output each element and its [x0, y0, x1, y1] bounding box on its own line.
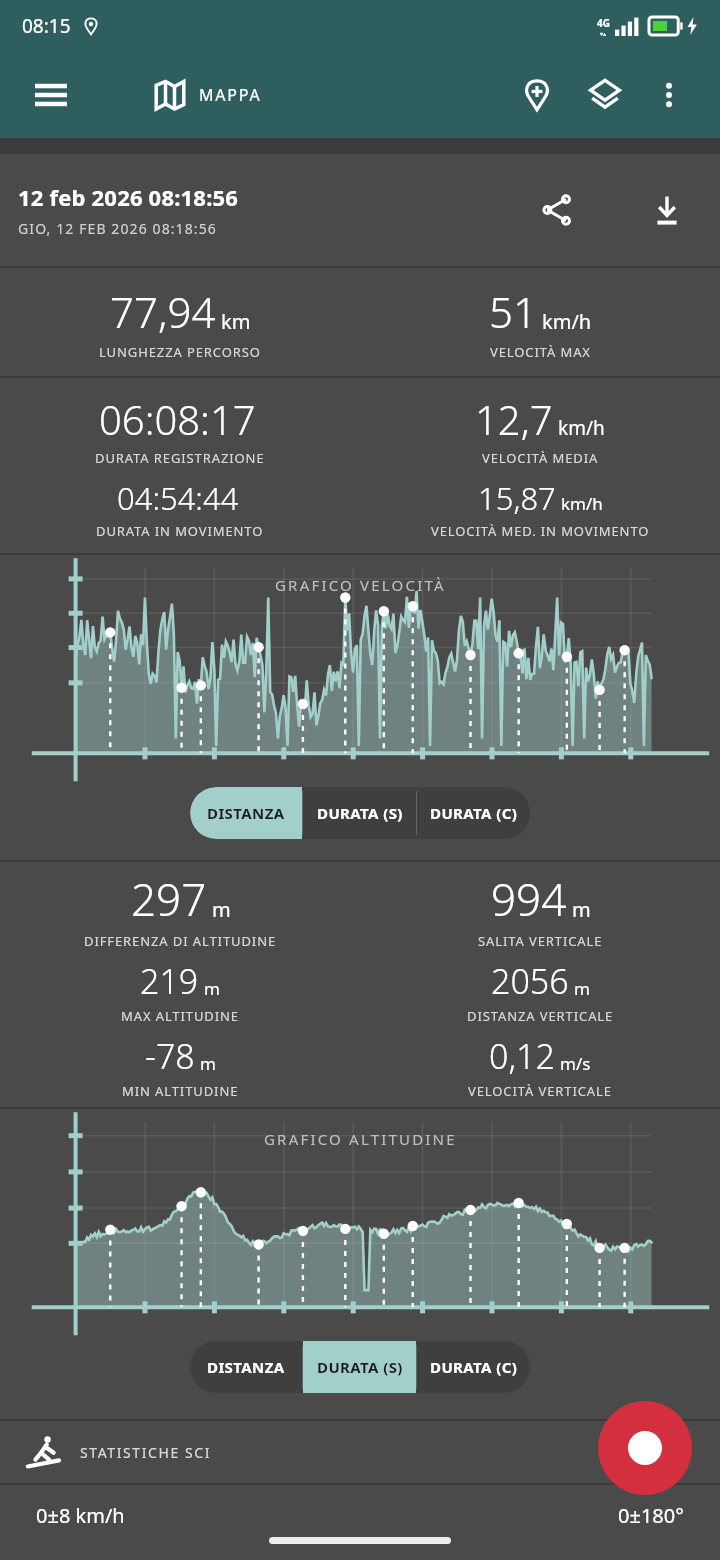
staticText: VELOCITÀ MED. IN MOVIMENTO	[431, 522, 650, 540]
button[interactable]: DISTANZA	[190, 787, 302, 839]
button[interactable]: Altre opzioni	[646, 72, 692, 118]
staticText: 04:54:44	[117, 477, 239, 519]
staticText: DISTANZA	[207, 803, 285, 823]
staticText: 15,87	[478, 477, 556, 519]
staticText: -78	[145, 1033, 195, 1079]
staticText: SALITA VERTICALE	[478, 932, 603, 950]
button[interactable]: DURATA (C)	[417, 1341, 530, 1393]
staticText: DISTANZA VERTICALE	[467, 1007, 614, 1025]
staticText: 4G	[597, 16, 610, 30]
staticText: m	[200, 1052, 216, 1075]
staticText: m	[574, 977, 590, 1000]
staticText: STATISTICHE SCI	[80, 1443, 212, 1462]
staticText: km/h	[558, 415, 605, 441]
staticText: DURATA (C)	[430, 803, 518, 823]
staticText: 0±180°	[618, 1502, 684, 1529]
button[interactable]: Registra	[598, 1401, 692, 1495]
staticText: 0,12	[489, 1033, 555, 1079]
button[interactable]: Aggiungi punto	[514, 72, 560, 118]
staticText: VELOCITÀ VERTICALE	[468, 1082, 612, 1100]
button[interactable]: STATISTICHE SCI	[24, 1421, 720, 1483]
staticText: MAX ALTITUDINE	[121, 1007, 239, 1025]
staticText: GIO, 12 FEB 2026 08:18:56	[18, 219, 217, 238]
button[interactable]: Menu	[28, 72, 74, 118]
staticText: DURATA IN MOVIMENTO	[96, 522, 264, 540]
staticText: DURATA (C)	[430, 1357, 518, 1377]
staticText: m/s	[560, 1052, 591, 1075]
button[interactable]: DURATA (S)	[303, 1341, 416, 1393]
staticText: MAPPA	[199, 84, 262, 106]
staticText: 12 feb 2026 08:18:56	[18, 182, 239, 212]
button[interactable]: DISTANZA	[190, 1341, 302, 1393]
button[interactable]: DURATA (S)	[303, 787, 416, 839]
staticText: DURATA REGISTRAZIONE	[95, 449, 265, 467]
staticText: VELOCITÀ MAX	[490, 343, 591, 361]
staticText: MIN ALTITUDINE	[122, 1082, 239, 1100]
staticText: km/h	[542, 308, 592, 335]
button[interactable]: Condividi	[530, 183, 584, 237]
staticText: 06:08:17	[99, 392, 256, 446]
staticText: m	[572, 896, 591, 923]
staticText: 77,94	[110, 283, 216, 340]
button[interactable]: Scarica	[640, 183, 694, 237]
button[interactable]: Livelli	[582, 72, 628, 118]
staticText: km/h	[561, 492, 603, 515]
staticText: 0±8 km/h	[36, 1502, 125, 1529]
staticText: DISTANZA	[207, 1357, 285, 1377]
staticText: m	[212, 896, 231, 923]
staticText: 994	[491, 869, 567, 929]
staticText: ▾▴	[600, 30, 607, 37]
staticText: GRAFICO VELOCITÀ	[275, 575, 446, 595]
staticText: VELOCITÀ MEDIA	[482, 449, 599, 467]
staticText: DURATA (S)	[317, 803, 403, 823]
staticText: 08:15	[22, 13, 71, 39]
staticText: LUNGHEZZA PERCORSO	[99, 343, 261, 361]
button[interactable]: DURATA (C)	[417, 787, 530, 839]
staticText: 51	[489, 283, 537, 340]
staticText: DIFFERENZA DI ALTITUDINE	[84, 932, 277, 950]
staticText: m	[204, 977, 220, 1000]
staticText: km	[221, 308, 251, 335]
staticText: DURATA (S)	[317, 1357, 403, 1377]
staticText: GRAFICO ALTITUDINE	[264, 1129, 457, 1149]
button[interactable]: MAPPA	[100, 64, 316, 126]
staticText: 12,7	[475, 392, 553, 446]
staticText: 297	[131, 869, 207, 929]
staticText: 219	[140, 958, 199, 1004]
staticText: 2056	[491, 958, 569, 1004]
